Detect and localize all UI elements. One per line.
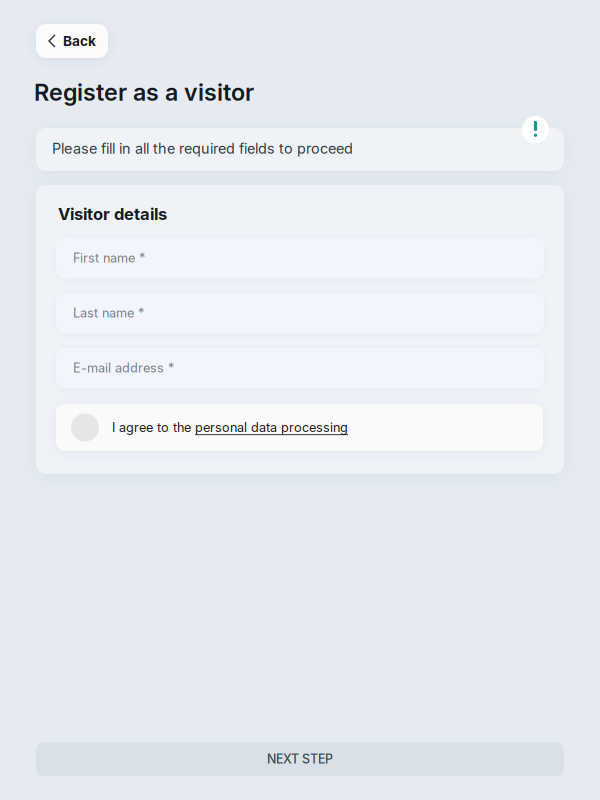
- staticText: I agree to the personal data processing: [112, 420, 348, 435]
- staticText: First name *: [73, 250, 145, 266]
- staticText: Please fill in all the required fields t…: [52, 140, 353, 157]
- staticText: Visitor details: [58, 204, 167, 224]
- button[interactable]: NEXT STEP: [36, 742, 564, 776]
- button[interactable]: Back: [36, 24, 108, 58]
- staticText: E-mail address *: [73, 360, 174, 376]
- staticText: Last name *: [73, 305, 144, 321]
- staticText: Back: [63, 33, 96, 49]
- staticText: NEXT STEP: [267, 751, 333, 766]
- button[interactable]: I agree to the personal data processing: [56, 404, 543, 451]
- staticText: Register as a visitor: [34, 78, 254, 106]
